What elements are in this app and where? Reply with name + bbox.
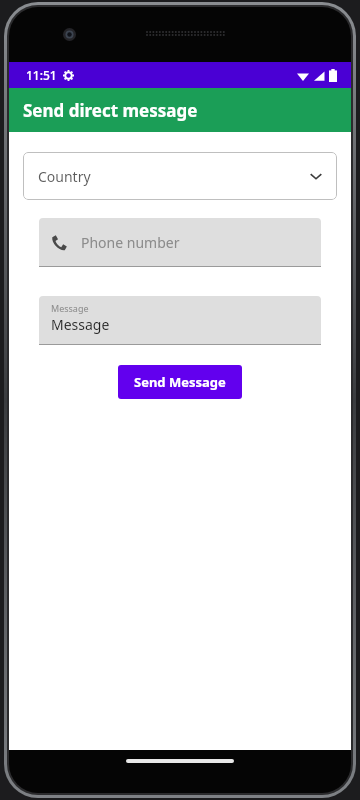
button[interactable]: Phone (39, 218, 321, 267)
staticText: Send direct message (23, 99, 198, 122)
button[interactable]: Send Message (118, 365, 242, 399)
other: Open country list (309, 169, 323, 183)
staticText: Message (51, 302, 89, 314)
other: Phone (51, 235, 67, 251)
button[interactable]: Country (23, 152, 337, 200)
button[interactable]: Message (39, 296, 321, 345)
staticText: 11:51 (26, 67, 57, 83)
staticText: Country (38, 167, 91, 186)
staticText: Phone number (81, 233, 180, 252)
staticText: Send Message (134, 373, 226, 391)
staticText: Message (51, 315, 110, 334)
